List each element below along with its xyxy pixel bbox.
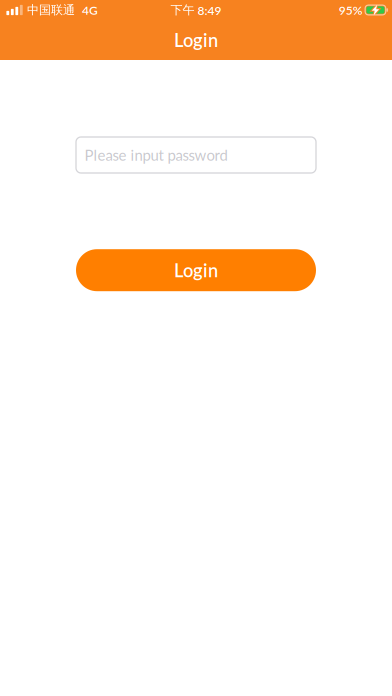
button[interactable]: Login [76,249,316,291]
button[interactable]: Please input password [76,137,316,173]
staticText: Please input password [84,146,227,164]
staticText: 下午 8:49 [170,2,221,17]
staticText: 4G [82,3,98,17]
staticText: Login [174,259,218,281]
staticText: 95% [339,3,363,17]
staticText: 中国联通 [27,2,75,17]
staticText: Login [174,29,218,51]
